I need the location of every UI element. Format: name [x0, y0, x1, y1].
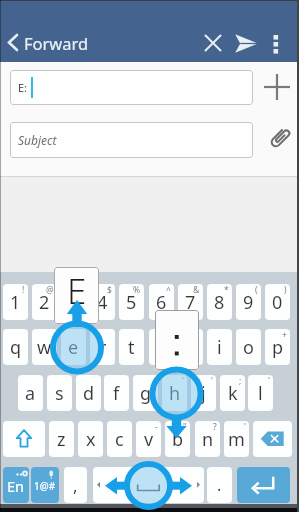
staticText: v	[144, 427, 154, 452]
button[interactable]: 1	[3, 284, 28, 320]
button[interactable]: u	[178, 329, 203, 365]
button[interactable]: z	[49, 421, 74, 457]
button[interactable]: 1@#	[31, 467, 59, 503]
button[interactable]: b	[165, 421, 190, 457]
button[interactable]	[234, 33, 259, 54]
staticText: x	[86, 427, 96, 452]
button[interactable]: r	[90, 329, 115, 365]
button[interactable]: m	[224, 421, 249, 457]
staticText: E:	[18, 80, 28, 95]
staticText: ?	[213, 421, 217, 433]
button[interactable]: w	[32, 329, 57, 365]
button[interactable]: e	[61, 329, 86, 365]
button[interactable]: d	[76, 375, 101, 411]
staticText: l	[258, 381, 263, 406]
button[interactable]	[204, 34, 222, 52]
staticText: 9	[243, 290, 254, 315]
button[interactable]: Subject	[10, 122, 253, 158]
button[interactable]: h	[162, 375, 187, 411]
button[interactable]: 6	[149, 284, 174, 320]
staticText: #	[77, 284, 83, 296]
staticText: p	[272, 335, 284, 360]
button[interactable]: 7	[178, 284, 203, 320]
staticText: ;	[239, 375, 242, 387]
button[interactable]	[93, 467, 204, 503]
button[interactable]: Forward	[0, 26, 110, 60]
staticText: '	[244, 421, 246, 433]
button[interactable]: 5	[119, 284, 144, 320]
button[interactable]	[3, 421, 45, 457]
staticText: 6	[156, 290, 167, 315]
staticText: q	[10, 335, 22, 360]
button[interactable]: l	[248, 375, 273, 411]
button[interactable]	[268, 30, 284, 56]
staticText: f	[113, 381, 120, 406]
staticText: 1@#	[34, 479, 56, 493]
staticText: n	[202, 427, 214, 452]
staticText: c	[115, 427, 124, 452]
button[interactable]: p	[265, 329, 290, 365]
staticText: '	[268, 375, 270, 387]
button[interactable]	[253, 421, 292, 457]
staticText: -	[155, 421, 158, 433]
button[interactable]: q	[3, 329, 28, 365]
button[interactable]: k	[220, 375, 245, 411]
staticText: 3	[68, 290, 79, 315]
staticText: 1	[10, 290, 21, 315]
staticText: '	[182, 375, 184, 387]
staticText: t	[128, 335, 135, 360]
button[interactable]: y	[149, 329, 174, 365]
button[interactable]	[237, 467, 290, 503]
button[interactable]	[263, 73, 291, 101]
staticText: Forward	[24, 32, 89, 54]
staticText: ^	[166, 284, 171, 296]
staticText: s	[55, 381, 64, 406]
staticText: g	[140, 381, 152, 406]
button[interactable]: 8	[207, 284, 232, 320]
button[interactable]: 2	[32, 284, 57, 320]
button[interactable]: 4	[90, 284, 115, 320]
button[interactable]: 3	[61, 284, 86, 320]
button[interactable]: s	[47, 375, 72, 411]
button[interactable]: E:	[10, 70, 253, 105]
button[interactable]: j	[191, 375, 216, 411]
staticText: $	[107, 284, 112, 296]
button[interactable]: i	[207, 329, 232, 365]
staticText: z	[57, 427, 66, 452]
staticText: +	[282, 329, 287, 341]
staticText: &	[193, 284, 200, 296]
button[interactable]: f	[104, 375, 129, 411]
staticText: 4	[97, 290, 108, 315]
staticText: E	[67, 267, 87, 315]
staticText: h	[169, 381, 181, 406]
button[interactable]	[265, 125, 293, 153]
button[interactable]: o	[236, 329, 261, 365]
button[interactable]: a	[18, 375, 43, 411]
staticText: k	[228, 381, 238, 406]
button[interactable]: En	[3, 467, 29, 503]
staticText: a	[25, 381, 36, 406]
staticText: En	[7, 476, 25, 496]
staticText: j	[201, 381, 206, 406]
staticText: .	[217, 474, 222, 496]
button[interactable]: v	[136, 421, 161, 457]
staticText: d	[83, 381, 95, 406]
button[interactable]: ,	[64, 467, 87, 503]
button[interactable]: n	[195, 421, 220, 457]
button[interactable]: g	[133, 375, 158, 411]
staticText: i	[217, 335, 222, 360]
button[interactable]: c	[107, 421, 132, 457]
button[interactable]: 9	[236, 284, 261, 320]
staticText: w	[37, 335, 52, 360]
button[interactable]: x	[78, 421, 103, 457]
button[interactable]: .	[207, 467, 232, 503]
staticText: !	[22, 284, 25, 296]
button[interactable]: 0	[265, 284, 290, 320]
staticText: b	[172, 427, 184, 452]
staticText: m	[228, 427, 245, 452]
staticText: *	[224, 284, 229, 296]
button[interactable]: t	[119, 329, 144, 365]
staticText: 2	[39, 290, 50, 315]
staticText: '	[211, 375, 213, 387]
